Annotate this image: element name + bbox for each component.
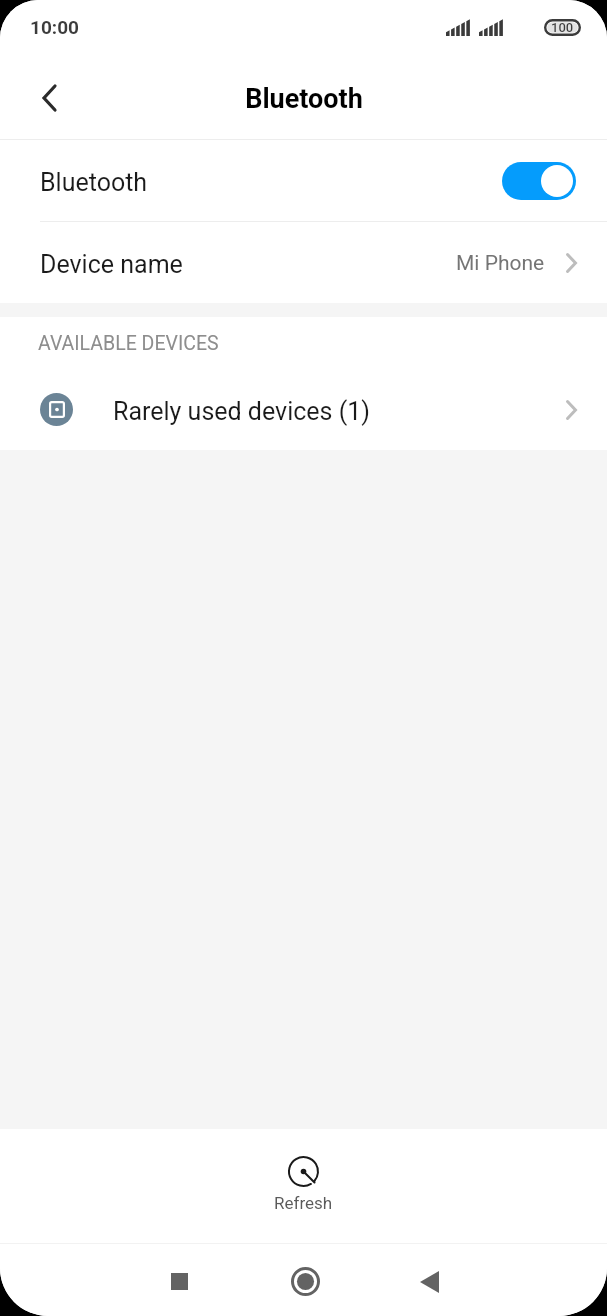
button[interactable]: Recents: [155, 1257, 204, 1306]
button[interactable]: Device name: [0, 222, 607, 303]
staticText: Rarely used devices (1): [113, 397, 370, 426]
staticText: AVAILABLE DEVICES: [38, 332, 219, 355]
staticText: Bluetooth: [40, 168, 148, 197]
button[interactable]: Rarely used devices (1): [0, 369, 607, 450]
button[interactable]: Home: [281, 1257, 330, 1306]
button[interactable]: Back: [21, 70, 77, 126]
staticText: 100: [551, 20, 574, 35]
staticText: Bluetooth: [245, 83, 363, 115]
button[interactable]: Back: [405, 1257, 454, 1306]
button[interactable]: Refresh: [243, 1129, 364, 1243]
staticText: Refresh: [274, 1193, 333, 1213]
staticText: Mi Phone: [456, 251, 545, 276]
staticText: Device name: [40, 250, 183, 279]
button[interactable]: Bluetooth toggle: [502, 162, 576, 200]
button[interactable]: Bluetooth: [0, 140, 607, 221]
staticText: 10:00: [30, 16, 79, 38]
